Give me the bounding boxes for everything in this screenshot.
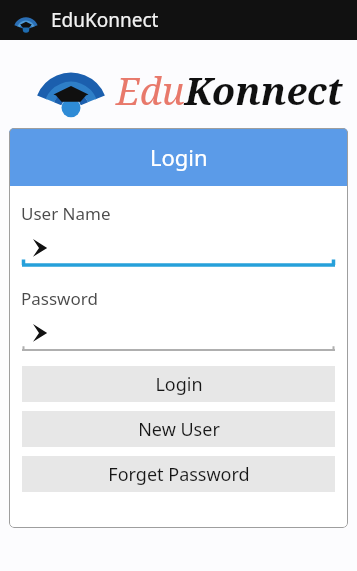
staticText: New User: [138, 417, 220, 442]
staticText: Login: [155, 372, 203, 397]
staticText: EduKonnect: [51, 7, 159, 33]
staticText: User Name: [21, 202, 111, 225]
staticText: Password: [21, 287, 98, 310]
staticText: Login: [150, 142, 208, 172]
staticText: Forget Password: [108, 462, 250, 487]
button[interactable]: New User: [22, 411, 335, 447]
other: EduKonnect app icon: [13, 7, 39, 33]
button[interactable]: Password input: [22, 318, 335, 352]
staticText: EduKonnect: [116, 64, 343, 116]
button[interactable]: User Name input: [22, 233, 335, 267]
button[interactable]: Forget Password: [22, 456, 335, 492]
button[interactable]: Login: [22, 366, 335, 402]
